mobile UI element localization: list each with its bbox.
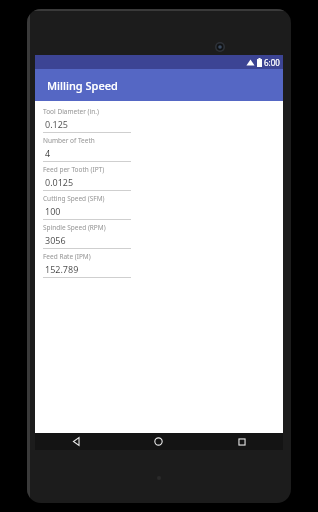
staticText: 100 — [45, 205, 61, 217]
button[interactable]: Feed per Tooth (IPT) — [43, 164, 138, 193]
staticText: Number of Teeth — [43, 136, 95, 145]
staticText: Feed per Tooth (IPT) — [43, 165, 105, 174]
staticText: 0.0125 — [45, 176, 74, 188]
staticText: Feed Rate (IPM) — [43, 252, 91, 261]
staticText: 6:00 — [264, 57, 280, 68]
staticText: Cutting Speed (SFM) — [43, 194, 105, 203]
button[interactable]: Cutting Speed (SFM) — [43, 193, 138, 222]
button[interactable]: Number of Teeth — [43, 135, 138, 164]
staticText: Tool Diameter (in.) — [43, 107, 99, 116]
button[interactable]: Feed Rate (IPM) — [43, 251, 138, 280]
button[interactable]: Home — [117, 433, 200, 450]
staticText: 152.789 — [45, 263, 79, 275]
staticText: Spindle Speed (RPM) — [43, 223, 106, 232]
staticText: 3056 — [45, 234, 66, 246]
button[interactable]: Tool Diameter (in.) — [43, 106, 138, 135]
button[interactable]: Back — [35, 433, 117, 450]
staticText: 4 — [45, 147, 51, 159]
staticText: Milling Speed — [47, 78, 118, 93]
button[interactable]: Spindle Speed (RPM) — [43, 222, 138, 251]
button[interactable]: Recent apps — [200, 433, 283, 450]
staticText: 0.125 — [45, 118, 69, 130]
